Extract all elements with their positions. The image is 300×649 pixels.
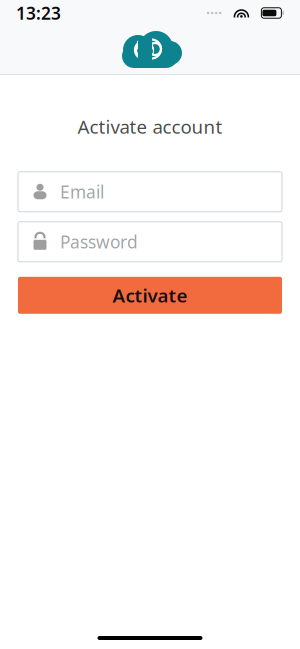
staticText: 13:23 xyxy=(16,1,61,24)
button[interactable]: Activate xyxy=(18,277,282,314)
staticText: Activate xyxy=(112,283,187,308)
staticText: Email xyxy=(60,180,104,203)
staticText: Password xyxy=(60,230,138,253)
staticText: Activate account xyxy=(77,114,222,139)
